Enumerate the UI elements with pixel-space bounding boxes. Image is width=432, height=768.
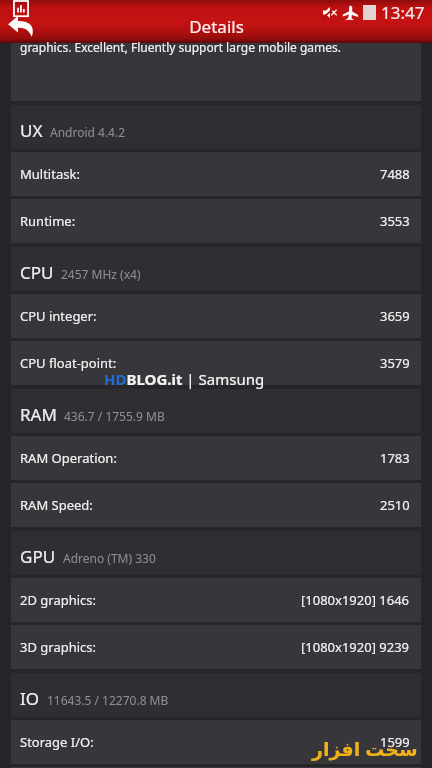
button[interactable]: Back bbox=[6, 11, 36, 41]
staticText: 11643.5 / 12270.8 MB bbox=[47, 692, 169, 708]
button[interactable]: Runtime: bbox=[11, 199, 421, 243]
button[interactable]: 2D graphics: bbox=[11, 578, 421, 622]
button[interactable]: 3D graphics: bbox=[11, 625, 421, 669]
staticText: 7488 bbox=[380, 165, 410, 183]
staticText: 3D graphics: bbox=[20, 638, 301, 656]
button[interactable]: CPU integer: bbox=[11, 294, 421, 338]
staticText: 1783 bbox=[380, 449, 410, 467]
staticText: سخت افزار bbox=[312, 736, 418, 762]
staticText: graphics. Excellent, Fluently support la… bbox=[20, 39, 342, 55]
staticText: CPU integer: bbox=[20, 307, 380, 325]
staticText: 2D graphics: bbox=[20, 591, 301, 609]
staticText: Runtime: bbox=[20, 212, 380, 230]
staticText: [1080x1920] 1646 bbox=[301, 591, 410, 609]
staticText: 436.7 / 1755.9 MB bbox=[64, 408, 165, 424]
staticText: Adreno (TM) 330 bbox=[63, 550, 156, 566]
staticText: HDBLOG.it | Samsung bbox=[104, 369, 265, 389]
staticText: CPU float-point: bbox=[20, 354, 380, 372]
staticText: 13:47 bbox=[381, 1, 425, 24]
button[interactable]: Storage I/O: bbox=[11, 720, 421, 764]
staticText: RAM Operation: bbox=[20, 449, 380, 467]
staticText: 1599 bbox=[380, 733, 410, 751]
button[interactable]: RAM Operation: bbox=[11, 436, 421, 480]
staticText: [1080x1920] 9239 bbox=[301, 638, 410, 656]
staticText: 3579 bbox=[380, 354, 410, 372]
staticText: GPU bbox=[20, 545, 56, 568]
staticText: RAM bbox=[20, 403, 57, 426]
staticText: Multitask: bbox=[20, 165, 380, 183]
button[interactable]: RAM Speed: bbox=[11, 483, 421, 527]
button[interactable]: CPU float-point: bbox=[11, 341, 421, 385]
staticText: UX bbox=[20, 119, 43, 142]
staticText: 3553 bbox=[380, 212, 410, 230]
staticText: IO bbox=[20, 687, 40, 710]
button[interactable]: Multitask: bbox=[11, 152, 421, 196]
staticText: 2510 bbox=[380, 496, 410, 514]
staticText: 2457 MHz (x4) bbox=[61, 266, 141, 282]
staticText: 3659 bbox=[380, 307, 410, 325]
staticText: Android 4.4.2 bbox=[50, 124, 126, 140]
staticText: Storage I/O: bbox=[20, 733, 380, 751]
staticText: Details bbox=[189, 15, 244, 38]
staticText: CPU bbox=[20, 261, 54, 284]
staticText: RAM Speed: bbox=[20, 496, 380, 514]
